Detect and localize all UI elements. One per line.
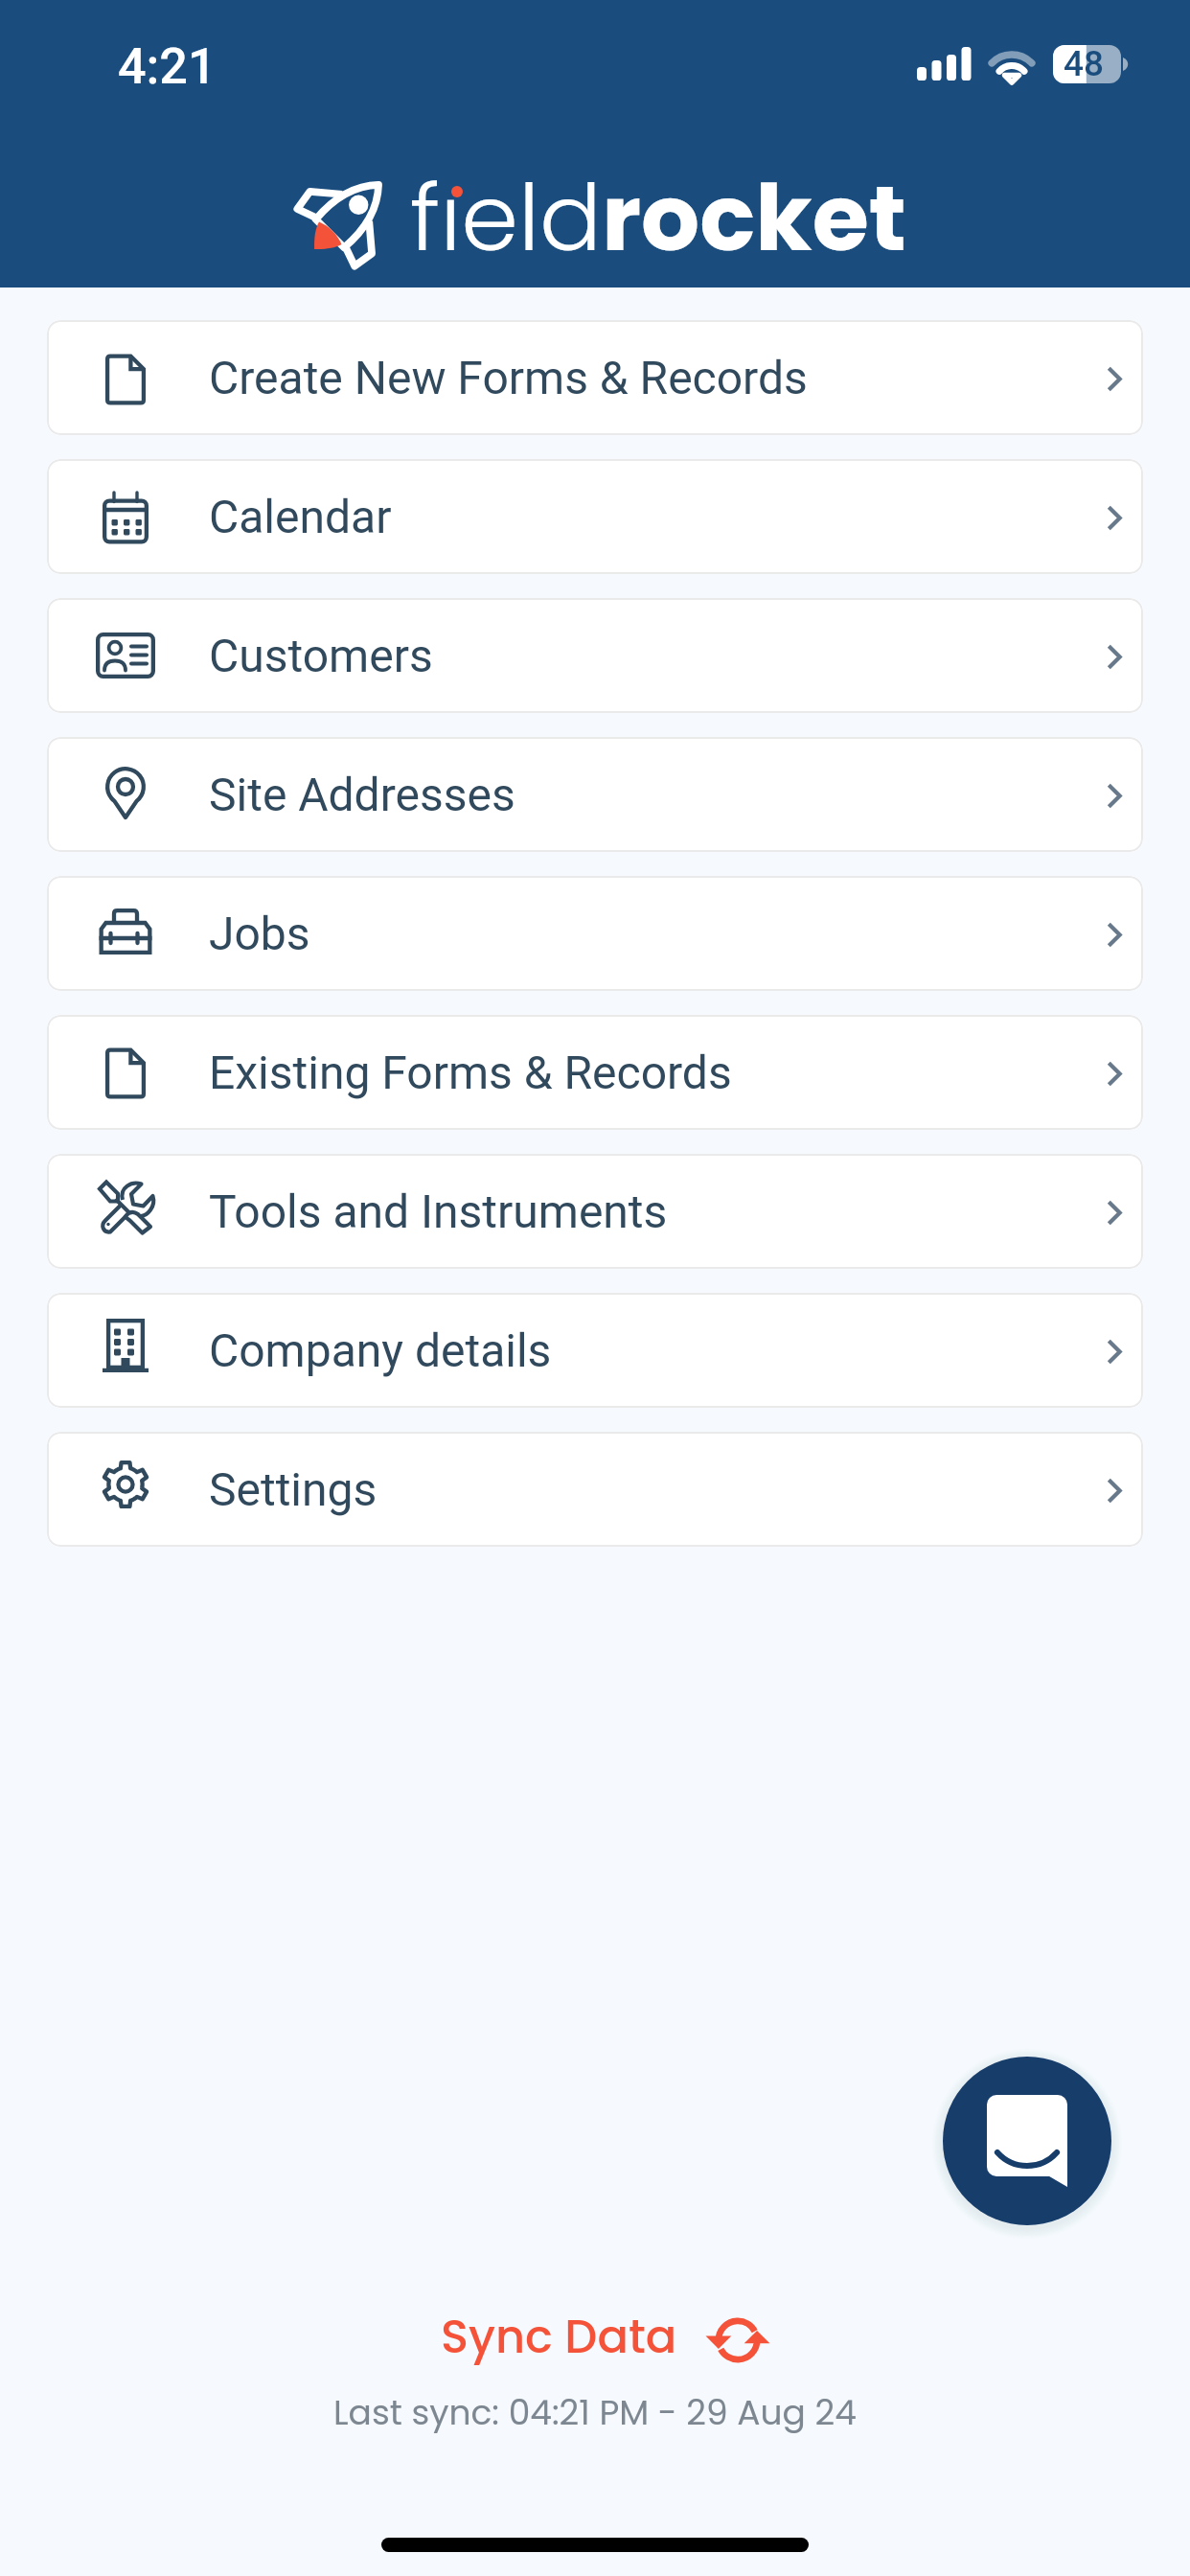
staticText: field bbox=[410, 153, 602, 282]
staticText: Last sync: 04:21 PM - 29 Aug 24 bbox=[333, 2388, 857, 2436]
button[interactable]: Customers bbox=[47, 598, 1143, 713]
staticText: Company details bbox=[209, 1323, 552, 1377]
staticText: Site Addresses bbox=[209, 768, 515, 821]
button[interactable]: Open support chat bbox=[943, 2057, 1111, 2225]
staticText: Customers bbox=[209, 629, 433, 682]
button[interactable]: Sync Data bbox=[433, 2299, 778, 2375]
staticText: 48 bbox=[1064, 43, 1105, 84]
button[interactable]: Create New Forms & Records bbox=[47, 320, 1143, 435]
staticText: 4:21 bbox=[118, 37, 217, 96]
staticText: Tools and Instruments bbox=[209, 1184, 668, 1238]
staticText: Existing Forms & Records bbox=[209, 1046, 732, 1099]
staticText: rocket bbox=[602, 153, 906, 282]
button[interactable]: Site Addresses bbox=[47, 737, 1143, 852]
staticText: Calendar bbox=[209, 490, 392, 543]
staticText: Sync Data bbox=[441, 2305, 677, 2369]
button[interactable]: Tools and Instruments bbox=[47, 1154, 1143, 1269]
staticText: Create New Forms & Records bbox=[209, 351, 808, 404]
button[interactable]: Jobs bbox=[47, 876, 1143, 991]
button[interactable]: Company details bbox=[47, 1293, 1143, 1408]
button[interactable]: Settings bbox=[47, 1432, 1143, 1547]
staticText: Jobs bbox=[209, 907, 310, 960]
button[interactable]: Existing Forms & Records bbox=[47, 1015, 1143, 1130]
staticText: Settings bbox=[209, 1462, 378, 1516]
button[interactable]: Calendar bbox=[47, 459, 1143, 574]
